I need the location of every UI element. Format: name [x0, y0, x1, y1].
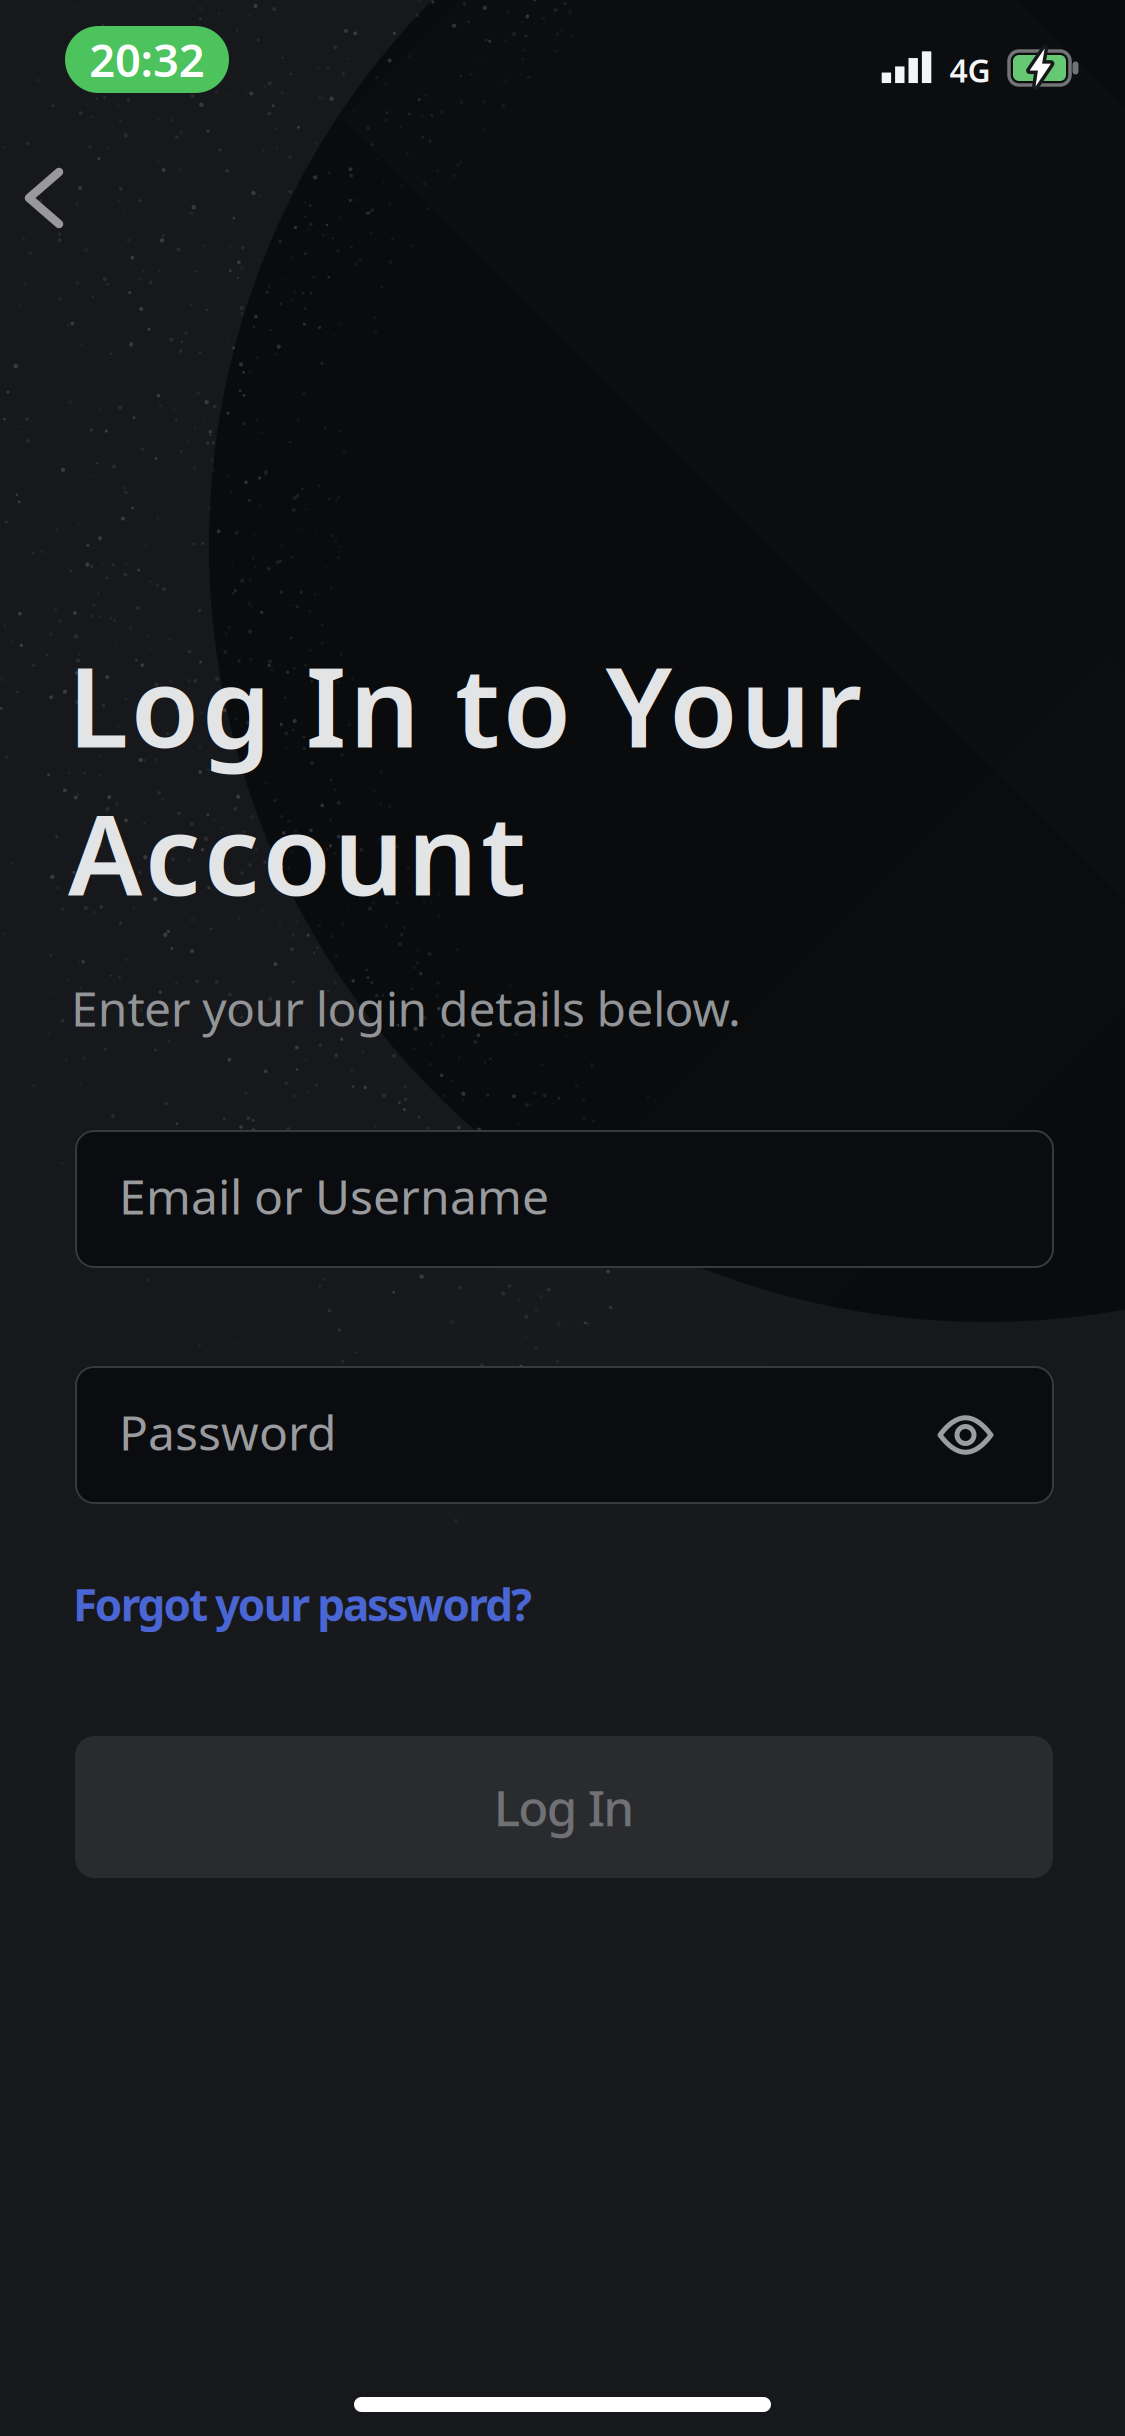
- button[interactable]: Email or Username: [75, 1130, 1054, 1268]
- staticText: Log In to Your Account: [68, 631, 862, 926]
- staticText: 20:32: [89, 29, 205, 90]
- button[interactable]: Password: [75, 1366, 1054, 1504]
- button[interactable]: Log In: [75, 1736, 1053, 1878]
- staticText: Enter your login details below.: [71, 976, 741, 1040]
- staticText: Password: [119, 1400, 337, 1464]
- staticText: 4G: [949, 49, 990, 91]
- staticText: Forgot your password?: [73, 1575, 532, 1633]
- button[interactable]: Forgot your password?: [73, 1575, 532, 1633]
- button[interactable]: Back: [0, 153, 90, 243]
- button[interactable]: Show password: [926, 1400, 1005, 1470]
- staticText: Email or Username: [119, 1164, 549, 1228]
- staticText: Log In: [494, 1774, 634, 1840]
